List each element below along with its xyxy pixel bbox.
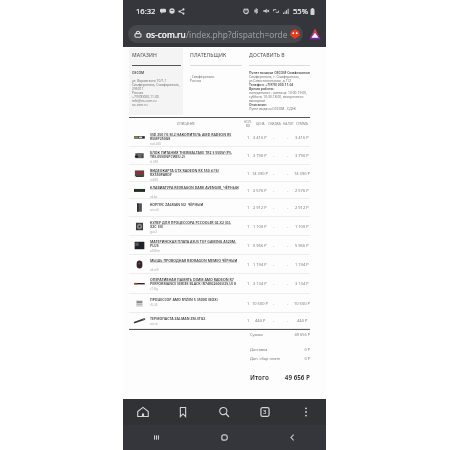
button[interactable]: КУЛЕР ДЛЯ ПРОЦЕССОРА PCCOOLER GI-X2 (GI-… [129, 217, 310, 236]
button[interactable]: ВИДЕОКАРТА GTX RADEON RX 550 4 ГБ/RX550P… [129, 165, 310, 182]
button[interactable]: os-com.ru [128, 25, 303, 43]
staticText: - [273, 301, 275, 306]
staticText: 2 912 Р [295, 205, 309, 210]
staticText: 5 966 Р [295, 243, 309, 248]
staticText: - [273, 171, 275, 176]
button[interactable]: Back [258, 425, 326, 450]
staticText: ОПИСАНИЕ [177, 122, 195, 126]
staticText: 2 912 Р [253, 205, 267, 210]
button[interactable]: SSD 250 ГБ M.2 НАКОПИТЕЛЬ AMD RADEON R5 … [129, 129, 310, 147]
staticText: 295011 [132, 86, 144, 90]
staticText: Доставка [250, 347, 280, 352]
button[interactable]: МЫШЬ ПРОВОДНАЯ REDRAGON MEMEO ЧЁРНЫЙ [129, 255, 310, 274]
staticText: 14 390 Р [252, 171, 268, 176]
staticText: - [287, 171, 289, 176]
staticText: СКИДКА [268, 122, 281, 126]
staticText: 10 500 Р [294, 301, 310, 306]
button[interactable]: Home [190, 425, 258, 450]
button[interactable]: More options [285, 399, 326, 425]
staticText: 49 656 Р [280, 332, 310, 337]
staticText: 1 100 Р [295, 224, 309, 229]
staticText: a520m [150, 249, 160, 253]
staticText: выходной [249, 98, 265, 102]
staticText: 16:32 [136, 6, 156, 16]
staticText: 55% [293, 6, 308, 16]
button[interactable]: ПРОЦЕССОР AMD RYZEN 5 3500X (BOX) [129, 294, 310, 313]
staticText: суббота: 10:30-18:00, воскресенье: [249, 94, 304, 98]
staticText: 49 656 Р [280, 373, 310, 382]
staticText: - [273, 318, 275, 323]
button[interactable]: Brave menu [307, 26, 323, 42]
button[interactable]: Recent apps [123, 425, 190, 450]
staticText: ТЕРМОПАСТА ZALMAN ZM-STG2 [150, 316, 206, 320]
staticText: - [273, 153, 275, 158]
staticText: zm-n2 [150, 208, 159, 212]
staticText: - [287, 135, 289, 140]
staticText: ОПЕРАТИВНАЯ ПАМЯТЬ DIMM AMD RADEON R7 PE… [150, 277, 240, 285]
button[interactable]: МАТЕРИНСКАЯ ПЛАТА ASUS TUF GAMING A520M-… [129, 236, 310, 255]
staticText: ssd-250 [150, 142, 161, 146]
staticText: 1 194 Р [253, 262, 267, 267]
staticText: 1 [247, 153, 250, 158]
staticText: /index.php?dispatch=order [186, 29, 287, 40]
staticText: КОРПУС ZALMAN N2, ЧЁРНЫЙ [150, 202, 204, 206]
staticText: 14 390 Р [294, 171, 310, 176]
staticText: 3 416 Р [295, 135, 309, 140]
staticText: НАЛОГ [283, 122, 294, 126]
staticText: - [287, 205, 289, 210]
staticText: 3 416 Р [253, 135, 267, 140]
staticText: - [273, 243, 275, 248]
staticText: Симферополь, г. Симферополь, [249, 74, 300, 78]
staticText: Симферополь, Симферополь, [132, 82, 180, 86]
staticText: - [273, 205, 275, 210]
staticText: ПРОЦЕССОР AMD RYZEN 5 3500X (BOX) [150, 297, 218, 301]
staticText: КОЛ- ВО [244, 120, 252, 128]
staticText: 3 [263, 408, 267, 416]
staticText: - [287, 188, 289, 193]
staticText: 0 Р [280, 347, 310, 352]
staticText: 5 966 Р [253, 243, 267, 248]
button[interactable]: ОПЕРАТИВНАЯ ПАМЯТЬ DIMM AMD RADEON R7 PE… [129, 274, 310, 294]
staticText: МАТЕРИНСКАЯ ПЛАТА ASUS TUF GAMING A520M-… [150, 239, 240, 247]
staticText: - [273, 281, 275, 286]
staticText: rx550 [150, 178, 158, 181]
staticText: ДОСТАВИТЬ В [249, 52, 285, 59]
button[interactable]: КЛАВИАТУРА REDRAGON DARK AVENGER, ЧЁРНЫЙ [129, 182, 310, 199]
staticText: Описание: [249, 102, 267, 106]
staticText: zm-st [150, 322, 158, 326]
staticText: rd-m9 [150, 268, 159, 272]
staticText: Россия [190, 78, 202, 82]
staticText: SSD 250 ГБ M.2 НАКОПИТЕЛЬ AMD RADEON R5 … [150, 132, 240, 140]
staticText: Телефон: +7(978) 000-11-04 [249, 82, 294, 86]
button[interactable]: БЛОК ПИТАНИЯ THERMALTAKE TR2 S 550W (PS-… [129, 147, 310, 165]
staticText: 1 [247, 243, 250, 248]
staticText: 2 576 Р [295, 188, 309, 193]
staticText: - [287, 153, 289, 158]
staticText: 1 194 Р [295, 262, 309, 267]
button[interactable]: Bookmarks [163, 399, 203, 425]
button[interactable]: КОРПУС ZALMAN N2, ЧЁРНЫЙ [129, 199, 310, 217]
staticText: , Симферополь [190, 74, 215, 78]
button[interactable]: Brave Shields [290, 29, 300, 39]
button[interactable]: ТЕРМОПАСТА ZALMAN ZM-STG2 [129, 313, 310, 329]
staticText: r5-35 [150, 303, 158, 307]
staticText: Россия [132, 90, 144, 94]
staticText: - [287, 243, 289, 248]
staticText: - [287, 318, 289, 323]
staticText: 3 790 Р [253, 153, 267, 158]
staticText: понедельник - пятница: 10:00-19:00, [249, 90, 307, 94]
staticText: 3 134 Р [253, 281, 267, 286]
staticText: Сумма [250, 332, 280, 337]
staticText: 1 [247, 224, 250, 229]
staticText: МАГАЗИН [132, 52, 158, 59]
staticText: os-com.ru [146, 29, 186, 40]
staticText: 1 [247, 301, 250, 306]
button[interactable]: Search [203, 399, 244, 425]
staticText: 1 100 Р [253, 224, 267, 229]
staticText: Доп. сбор платежа [250, 356, 280, 361]
button[interactable]: Home [123, 399, 163, 425]
staticText: - [287, 281, 289, 286]
staticText: 3 134 Р [295, 281, 309, 286]
staticText: ВИДЕОКАРТА GTX RADEON RX 550 4 ГБ/RX550P… [150, 168, 240, 176]
button[interactable]: Tabs [244, 399, 285, 425]
